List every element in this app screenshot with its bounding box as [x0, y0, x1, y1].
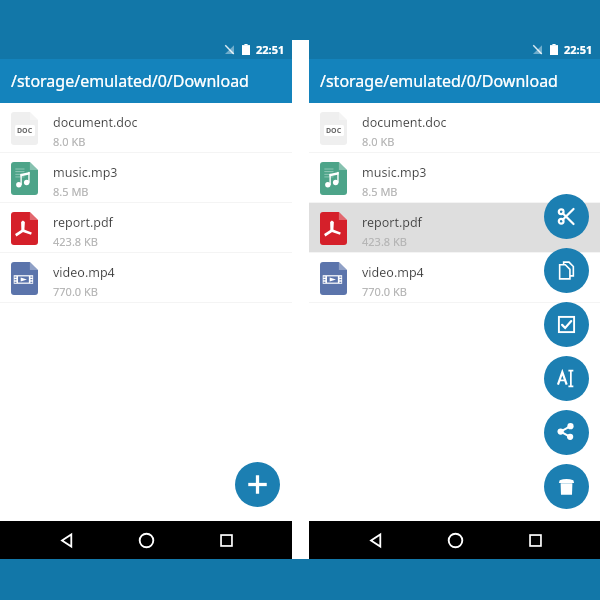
staticText: video.mp4	[53, 264, 115, 281]
button[interactable]: Home	[438, 523, 472, 557]
staticText: report.pdf	[362, 214, 422, 231]
staticText: 22:51	[564, 42, 593, 57]
button[interactable]: Back	[49, 523, 83, 557]
button[interactable]: DOC	[0, 103, 292, 153]
button[interactable]: Recents	[518, 523, 552, 557]
button[interactable]: DOC	[309, 103, 600, 153]
staticText: 22:51	[256, 42, 285, 57]
staticText: 423.8 KB	[53, 234, 98, 249]
button[interactable]: video.mp4	[0, 253, 292, 303]
staticText: /storage/emulated/0/Download	[320, 70, 558, 92]
staticText: 8.5 MB	[53, 184, 89, 199]
button[interactable]: Copy	[544, 248, 589, 293]
staticText: 770.0 KB	[362, 284, 407, 299]
button[interactable]: video.mp4	[309, 253, 600, 303]
button[interactable]: report.pdf	[0, 203, 292, 253]
button[interactable]: music.mp3	[0, 153, 292, 203]
button[interactable]: Rename	[544, 356, 589, 401]
staticText: 8.0 KB	[362, 134, 395, 149]
staticText: 770.0 KB	[53, 284, 98, 299]
button[interactable]: Home	[129, 523, 163, 557]
staticText: music.mp3	[53, 164, 118, 181]
staticText: /storage/emulated/0/Download	[11, 70, 249, 92]
staticText: 8.0 KB	[53, 134, 86, 149]
button[interactable]: music.mp3	[309, 153, 600, 203]
button[interactable]: Share	[544, 410, 589, 455]
button[interactable]: Recents	[209, 523, 243, 557]
staticText: DOC	[326, 126, 342, 136]
staticText: report.pdf	[53, 214, 113, 231]
staticText: 8.5 MB	[362, 184, 398, 199]
staticText: music.mp3	[362, 164, 427, 181]
button[interactable]: report.pdf	[309, 203, 600, 253]
button[interactable]: /storage/emulated/0/Download	[309, 59, 600, 103]
staticText: video.mp4	[362, 264, 424, 281]
button[interactable]: Cut	[544, 194, 589, 239]
button[interactable]: Back	[358, 523, 392, 557]
staticText: DOC	[17, 126, 33, 136]
button[interactable]: /storage/emulated/0/Download	[0, 59, 292, 103]
staticText: document.doc	[362, 114, 447, 131]
button[interactable]: Select all	[544, 302, 589, 347]
button[interactable]: Delete	[544, 464, 589, 509]
button[interactable]: Add file	[235, 462, 280, 507]
staticText: document.doc	[53, 114, 138, 131]
staticText: 423.8 KB	[362, 234, 407, 249]
